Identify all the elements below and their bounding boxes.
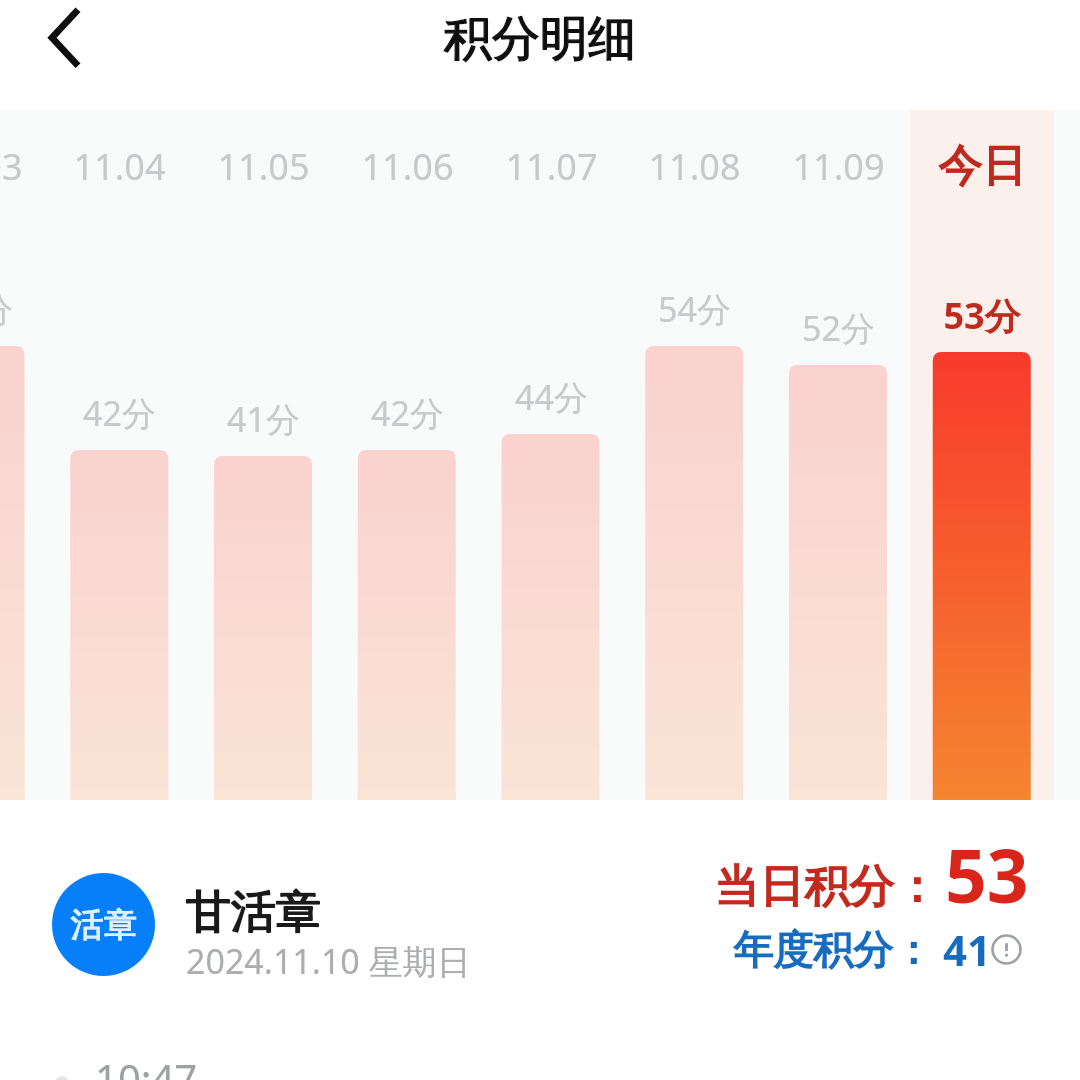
staticText: 甘活章 bbox=[186, 884, 321, 941]
button[interactable]: Back bbox=[12, 0, 108, 96]
staticText: 2024.11.10 星期日 bbox=[186, 938, 471, 984]
staticText: 44分 bbox=[515, 374, 588, 420]
button[interactable]: 11.03 bbox=[0, 110, 48, 800]
button[interactable]: 11.09 bbox=[766, 110, 910, 800]
staticText: 今日 bbox=[938, 139, 1026, 194]
staticText: 当日积分： bbox=[714, 859, 939, 916]
staticText: 活章 bbox=[71, 904, 137, 946]
button[interactable]: 11.04 bbox=[47, 110, 191, 800]
button[interactable]: 11.05 bbox=[191, 110, 335, 800]
staticText: 11.08 bbox=[648, 142, 741, 191]
staticText: 52分 bbox=[802, 305, 875, 351]
staticText: 年度积分： bbox=[733, 925, 933, 975]
button[interactable]: 11.07 bbox=[479, 110, 623, 800]
staticText: 54分 bbox=[658, 286, 731, 332]
staticText: 41分 bbox=[227, 396, 300, 442]
staticText: 11.03 bbox=[0, 142, 23, 191]
staticText: 42分 bbox=[83, 390, 156, 436]
staticText: 41 bbox=[943, 921, 992, 978]
button[interactable]: 10:47 bbox=[0, 1040, 1080, 1080]
staticText: 53分 bbox=[943, 291, 1021, 339]
staticText: 积分明细 bbox=[0, 9, 1080, 69]
staticText: 11.06 bbox=[361, 142, 454, 191]
staticText: 积分明细 bbox=[0, 9, 1080, 69]
staticText: 11.07 bbox=[505, 142, 598, 191]
staticText: 活章 bbox=[71, 904, 137, 946]
button[interactable]: 活章 bbox=[52, 873, 155, 976]
staticText: 甘活章 bbox=[186, 884, 321, 941]
button[interactable]: Info bbox=[991, 934, 1022, 965]
staticText: 10:47 bbox=[95, 1051, 198, 1080]
staticText: 11.05 bbox=[217, 142, 310, 191]
button[interactable]: 11.08 bbox=[622, 110, 766, 800]
staticText: 42分 bbox=[371, 390, 444, 436]
staticText: 53 bbox=[945, 825, 1029, 924]
staticText: 54分 bbox=[0, 286, 13, 332]
button[interactable]: 今日 bbox=[910, 110, 1054, 800]
staticText: 11.09 bbox=[792, 142, 885, 191]
button[interactable]: 11.06 bbox=[335, 110, 479, 800]
staticText: 11.04 bbox=[73, 142, 166, 191]
